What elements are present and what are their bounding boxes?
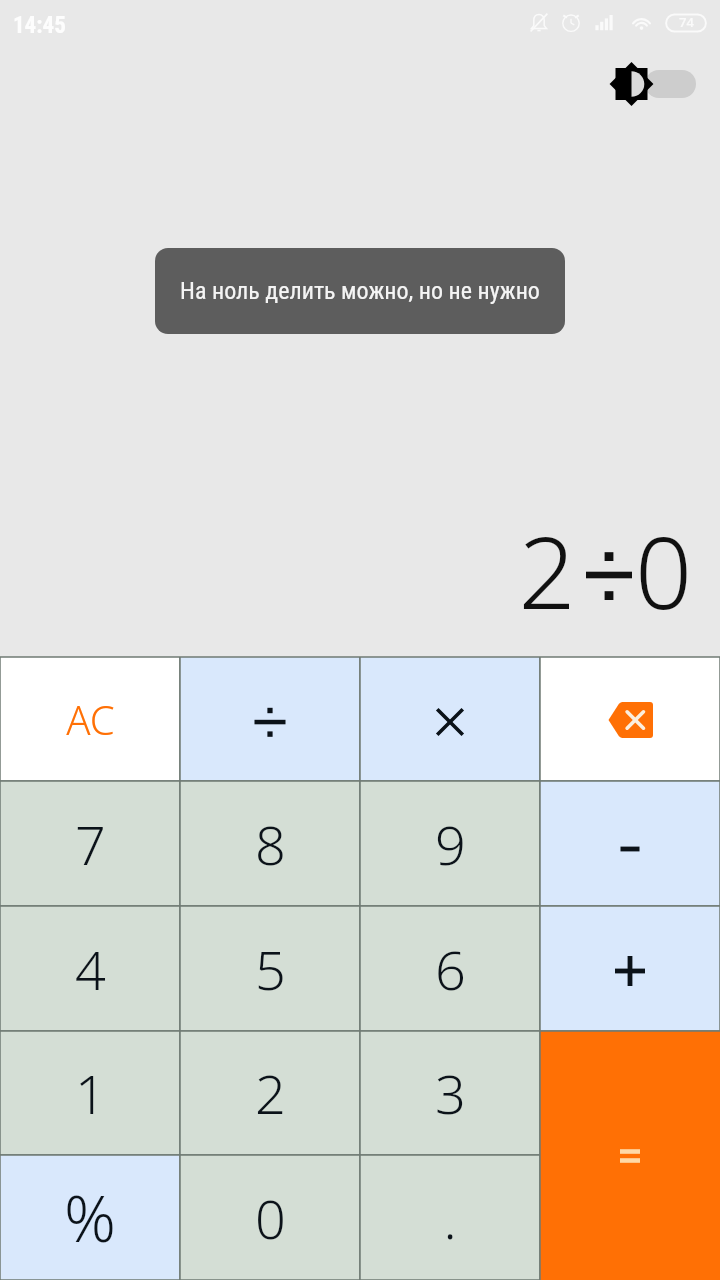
button[interactable]: Percent	[0, 1155, 180, 1280]
button[interactable]: Backspace	[540, 657, 720, 781]
staticText: AC	[66, 692, 115, 746]
button[interactable]: Minus	[540, 781, 720, 906]
staticText: %	[64, 1174, 116, 1261]
button[interactable]: 5	[180, 906, 360, 1031]
button[interactable]: Decimal point	[360, 1155, 540, 1280]
staticText: 8	[255, 807, 286, 881]
staticText: 1	[75, 1056, 106, 1130]
button[interactable]: 6	[360, 906, 540, 1031]
staticText: 4	[75, 932, 106, 1006]
button[interactable]: 9	[360, 781, 540, 906]
button[interactable]: Toggle theme	[607, 61, 703, 113]
staticText: 2 0	[518, 502, 692, 622]
staticText: 3	[435, 1056, 466, 1130]
button[interactable]: 2	[180, 1031, 360, 1155]
staticText: .	[443, 1181, 457, 1255]
button[interactable]: 7	[0, 781, 180, 906]
staticText: На ноль делить можно, но не нужно	[180, 277, 540, 305]
staticText: 5	[255, 932, 286, 1006]
button[interactable]: 3	[360, 1031, 540, 1155]
button[interactable]: Equals	[540, 1031, 720, 1280]
staticText: 74	[679, 13, 694, 31]
button[interactable]: 0	[180, 1155, 360, 1280]
staticText: 2	[255, 1056, 286, 1130]
staticText: 6	[435, 932, 466, 1006]
button[interactable]: Plus	[540, 906, 720, 1031]
staticText: 9	[435, 807, 466, 881]
staticText: 0	[255, 1181, 286, 1255]
button[interactable]: 8	[180, 781, 360, 906]
staticText: 7	[75, 807, 106, 881]
button[interactable]: Multiply	[360, 657, 540, 781]
button[interactable]: Divide	[180, 657, 360, 781]
button[interactable]: 4	[0, 906, 180, 1031]
button[interactable]: 1	[0, 1031, 180, 1155]
staticText: 14:45	[13, 12, 66, 39]
button[interactable]: AC	[0, 657, 180, 781]
